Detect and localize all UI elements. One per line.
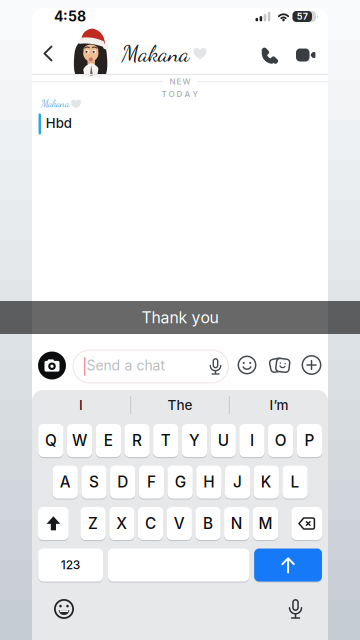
staticText: T O D A Y (161, 89, 198, 99)
staticText: Makana (41, 98, 69, 110)
button[interactable]: Video call (293, 42, 319, 68)
button[interactable]: Camera (38, 351, 66, 379)
button[interactable]: I (36, 392, 126, 418)
button[interactable]: N (224, 506, 249, 540)
staticText: C (145, 514, 156, 533)
button[interactable]: L (282, 465, 308, 499)
button[interactable]: A (53, 465, 78, 499)
button[interactable]: U (211, 423, 236, 457)
button[interactable]: F (139, 465, 164, 499)
staticText: P (304, 431, 314, 450)
staticText: 123 (61, 558, 81, 572)
staticText: R (132, 431, 142, 450)
button[interactable]: K (254, 465, 279, 499)
staticText: Send a chat (86, 357, 165, 374)
staticText: H (203, 473, 214, 491)
staticText: J (233, 473, 242, 491)
staticText: N E W (169, 77, 190, 86)
staticText: 57 (297, 11, 308, 22)
button[interactable]: Voice call (257, 42, 283, 68)
staticText: G (175, 473, 186, 491)
staticText: I’m (269, 397, 288, 413)
staticText: L (290, 473, 299, 491)
button[interactable]: Profile (70, 25, 110, 77)
staticText: X (116, 514, 127, 533)
staticText: U (218, 431, 229, 450)
button[interactable]: Send a chat (72, 349, 229, 383)
button[interactable]: E (96, 423, 121, 457)
staticText: I (79, 397, 83, 413)
button[interactable]: I (239, 423, 264, 457)
staticText: Y (189, 431, 200, 450)
staticText: Makana (121, 40, 189, 67)
staticText: B (203, 514, 213, 533)
button[interactable]: D (110, 465, 135, 499)
staticText: K (261, 473, 272, 491)
button[interactable]: Back (36, 41, 60, 65)
button[interactable]: P (297, 423, 322, 457)
button[interactable]: Z (80, 506, 106, 540)
button[interactable]: The (135, 392, 225, 418)
button[interactable]: Emoji keyboard (54, 599, 74, 619)
staticText: Q (45, 431, 57, 450)
button[interactable]: B (195, 506, 221, 540)
button[interactable]: X (109, 506, 134, 540)
staticText: D (117, 473, 128, 491)
button[interactable]: Emoji (237, 355, 256, 374)
staticText: I (250, 431, 254, 450)
button[interactable]: H (196, 465, 221, 499)
staticText: O (275, 431, 287, 450)
button[interactable]: Q (38, 423, 63, 457)
staticText: S (89, 473, 99, 491)
button[interactable]: M (253, 506, 278, 540)
button[interactable]: Stickers (269, 355, 291, 375)
button[interactable]: C (138, 506, 163, 540)
staticText: Thank you (141, 308, 218, 327)
button[interactable]: O (268, 423, 293, 457)
staticText: F (147, 473, 156, 491)
button[interactable]: More (301, 355, 321, 375)
staticText: W (72, 431, 87, 450)
button[interactable]: Space (108, 548, 249, 582)
button[interactable]: I’m (234, 392, 324, 418)
button[interactable]: S (81, 465, 107, 499)
staticText: Hbd (46, 115, 72, 131)
button[interactable]: T (153, 423, 178, 457)
staticText: A (60, 473, 71, 491)
button[interactable]: G (167, 465, 193, 499)
staticText: Z (88, 514, 98, 533)
button[interactable]: Makana (121, 40, 206, 67)
button[interactable]: J (225, 465, 250, 499)
staticText: N (231, 514, 243, 533)
button[interactable]: Delete (291, 506, 322, 540)
staticText: E (104, 431, 113, 450)
button[interactable]: W (67, 423, 92, 457)
button[interactable]: R (124, 423, 150, 457)
button[interactable]: Dictation (288, 599, 303, 619)
button[interactable]: Send (254, 548, 322, 582)
staticText: 4:58 (54, 8, 86, 25)
staticText: V (174, 514, 185, 533)
button[interactable]: V (167, 506, 192, 540)
staticText: The (167, 397, 192, 413)
staticText: T (161, 431, 171, 450)
button[interactable]: 123 (38, 548, 103, 582)
button[interactable]: Y (182, 423, 207, 457)
button[interactable]: Shift (38, 506, 69, 540)
staticText: M (258, 514, 272, 533)
